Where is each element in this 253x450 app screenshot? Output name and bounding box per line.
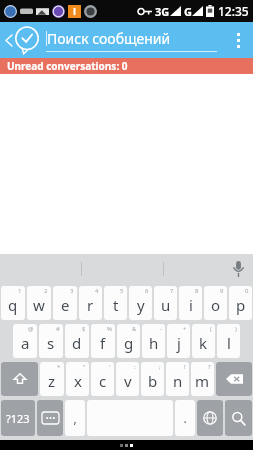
staticText: f xyxy=(100,333,106,353)
staticText: : xyxy=(134,363,136,371)
staticText: # xyxy=(56,325,60,333)
staticText: ? xyxy=(208,363,211,371)
button[interactable]: 8 xyxy=(179,286,202,320)
staticText: 3 xyxy=(70,287,74,295)
staticText: a xyxy=(21,333,30,353)
button[interactable]: 2 xyxy=(27,286,51,320)
staticText: + xyxy=(183,325,187,333)
staticText: - xyxy=(160,325,162,333)
staticText: l xyxy=(227,333,231,353)
button[interactable]: , xyxy=(65,400,85,436)
staticText: ; xyxy=(159,363,161,371)
button[interactable]: 5 xyxy=(104,286,127,320)
staticText: . xyxy=(183,410,187,426)
staticText: z xyxy=(48,371,56,391)
staticText: i xyxy=(189,295,193,315)
staticText: % xyxy=(107,325,112,333)
staticText: s xyxy=(47,333,55,353)
button[interactable]: . xyxy=(175,400,195,436)
staticText: , xyxy=(73,410,77,426)
staticText: 6 xyxy=(145,287,149,295)
button[interactable]: 6 xyxy=(129,286,152,320)
staticText: e xyxy=(61,295,70,315)
button[interactable]: % xyxy=(91,324,115,358)
staticText: o xyxy=(211,295,221,315)
button[interactable]: : xyxy=(116,362,139,396)
button[interactable]: Backspace xyxy=(216,362,252,396)
staticText: ( xyxy=(210,325,212,333)
staticText: j xyxy=(177,333,181,353)
staticText: t xyxy=(113,295,119,315)
staticText: 5 xyxy=(120,287,124,295)
button[interactable]: 3 xyxy=(53,286,77,320)
button[interactable]: 4 xyxy=(79,286,102,320)
staticText: h xyxy=(149,333,159,353)
staticText: 3G xyxy=(155,4,170,19)
staticText: ! xyxy=(184,363,186,371)
staticText: 7 xyxy=(170,287,174,295)
button[interactable]: & xyxy=(117,324,140,358)
button[interactable]: Back xyxy=(0,22,46,58)
staticText: 1 xyxy=(18,287,22,295)
button[interactable]: Change language xyxy=(197,400,223,436)
button[interactable]: Emoji xyxy=(37,400,63,436)
staticText: r xyxy=(87,295,94,315)
staticText: n xyxy=(173,371,183,391)
staticText: m xyxy=(195,371,210,391)
button[interactable]: ( xyxy=(192,324,215,358)
button[interactable]: 7 xyxy=(154,286,177,320)
staticText: @ xyxy=(28,325,34,333)
button[interactable]: ; xyxy=(141,362,164,396)
button[interactable]: ? xyxy=(191,362,214,396)
staticText: u xyxy=(161,295,171,315)
staticText: & xyxy=(132,325,137,333)
staticText: ?123 xyxy=(6,411,30,426)
button[interactable]: ! xyxy=(166,362,189,396)
button[interactable]: ' xyxy=(91,362,114,396)
staticText: v xyxy=(124,371,132,391)
staticText: 4 xyxy=(95,287,99,295)
button[interactable]: Voice input xyxy=(223,254,253,284)
button[interactable]: ?123 xyxy=(1,400,35,436)
button[interactable]: Shift xyxy=(1,362,38,396)
staticText: 9 xyxy=(220,287,224,295)
button[interactable]: - xyxy=(142,324,165,358)
button[interactable]: $ xyxy=(65,324,89,358)
button[interactable]: Unread conversations: 0 xyxy=(0,58,253,74)
staticText: G xyxy=(184,4,192,19)
staticText: y xyxy=(137,295,145,315)
button[interactable]: " xyxy=(66,362,89,396)
staticText: x xyxy=(74,371,82,391)
button[interactable]: * xyxy=(40,362,64,396)
staticText: w xyxy=(33,295,45,315)
staticText: q xyxy=(8,295,18,315)
button[interactable]: + xyxy=(167,324,190,358)
staticText: * xyxy=(57,363,61,371)
staticText: 12:35 xyxy=(218,3,249,19)
button[interactable]: # xyxy=(39,324,63,358)
staticText: Поиск сообщений xyxy=(47,29,171,48)
staticText: k xyxy=(199,333,208,353)
staticText: d xyxy=(72,333,82,353)
staticText: g xyxy=(124,333,134,353)
staticText: 8 xyxy=(195,287,199,295)
button[interactable]: ) xyxy=(217,324,240,358)
staticText: c xyxy=(99,371,107,391)
staticText: Unread conversations: 0 xyxy=(7,59,128,73)
staticText: ' xyxy=(109,363,111,371)
staticText: " xyxy=(83,363,86,371)
button[interactable]: 9 xyxy=(204,286,227,320)
button[interactable]: Search xyxy=(225,400,252,436)
button[interactable]: 1 xyxy=(1,286,25,320)
button[interactable]: More options xyxy=(223,22,253,58)
staticText: 2 xyxy=(44,287,48,295)
button[interactable]: @ xyxy=(13,324,37,358)
button[interactable]: 0 xyxy=(229,286,252,320)
staticText: ) xyxy=(235,325,237,333)
staticText: $ xyxy=(82,325,86,333)
staticText: 0 xyxy=(245,287,249,295)
staticText: p xyxy=(236,295,246,315)
staticText: b xyxy=(148,371,158,391)
